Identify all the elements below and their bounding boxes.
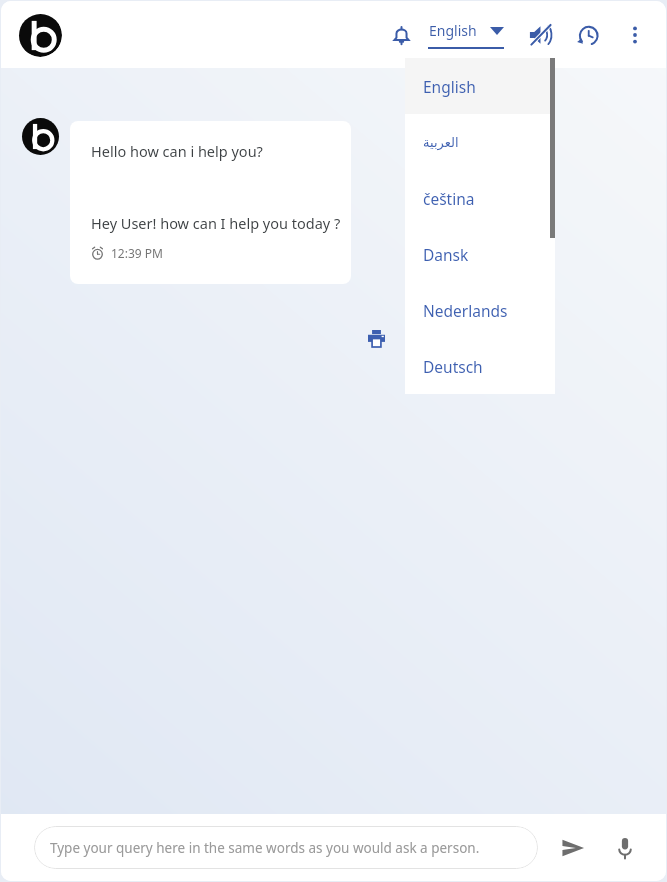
staticText: 12:39 PM	[111, 245, 163, 261]
button[interactable]: Hello how can i help you?	[70, 121, 351, 284]
staticText: Deutsch	[423, 356, 483, 377]
staticText: Type your query here in the same words a…	[50, 839, 480, 857]
button[interactable]: More options	[618, 18, 652, 52]
staticText: Hello how can i help you?	[91, 141, 263, 161]
staticText: English	[429, 21, 477, 40]
button[interactable]: Notifications	[384, 18, 418, 52]
button[interactable]: English	[424, 21, 508, 49]
button[interactable]: History	[570, 17, 606, 53]
button[interactable]: Type your query here in the same words a…	[34, 826, 538, 869]
staticText: Hey User! how can I help you today ?	[91, 213, 341, 233]
button[interactable]: Mute	[522, 17, 558, 53]
button[interactable]: Voice input	[606, 829, 644, 867]
button[interactable]: Print	[362, 324, 390, 352]
button[interactable]: العربية	[405, 114, 555, 170]
button[interactable]: Nederlands	[405, 282, 555, 338]
staticText: العربية	[423, 135, 459, 150]
button[interactable]: English	[405, 58, 555, 114]
button[interactable]: Dansk	[405, 226, 555, 282]
staticText: Dansk	[423, 244, 469, 265]
staticText: Nederlands	[423, 300, 508, 321]
staticText: čeština	[423, 188, 475, 209]
staticText: English	[423, 76, 476, 97]
button[interactable]: Deutsch	[405, 338, 555, 394]
button[interactable]: čeština	[405, 170, 555, 226]
button[interactable]: Home	[18, 13, 62, 57]
button[interactable]: Send	[554, 829, 592, 867]
